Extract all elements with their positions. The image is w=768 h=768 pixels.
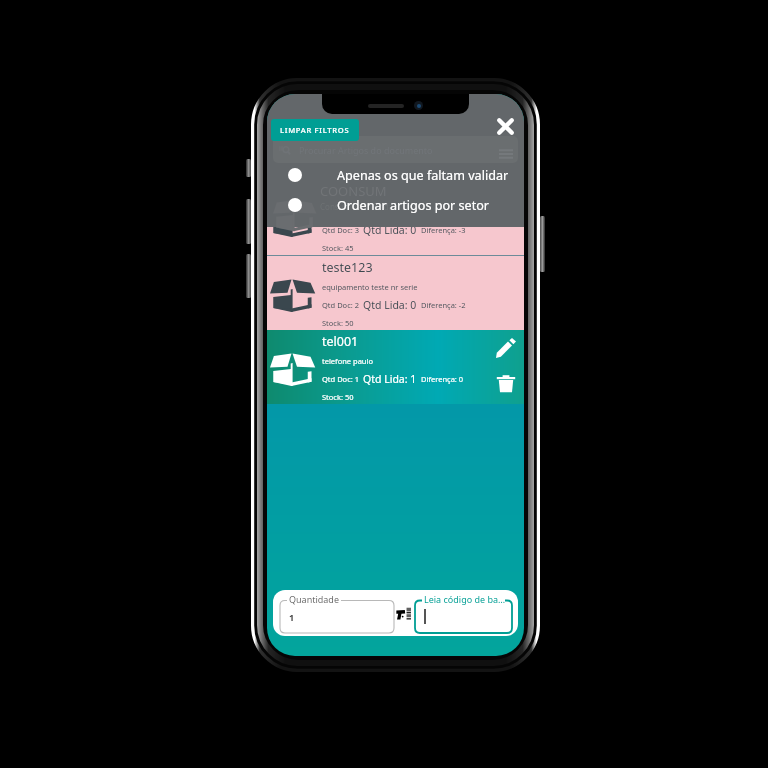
staticText: Stock: 45 [322,243,354,253]
staticText: tel001 [322,333,359,350]
button[interactable]: Delete [494,371,518,395]
staticText: Diferença: -2 [421,300,466,310]
button[interactable]: Quantidade [280,593,394,633]
staticText: Qtd Doc: 3 [322,225,359,235]
staticText: equipamento teste nr serie [322,282,418,292]
staticText: Consumiveis Venda [322,207,391,217]
button[interactable]: Procurar Artigos do documento [273,154,518,180]
button[interactable]: Leia código de ba… [415,593,512,633]
staticText: Qtd Doc: 1 [322,374,359,384]
staticText: Quantidade [289,593,339,605]
button[interactable]: Scan barcode [395,604,414,623]
staticText: Apenas os que faltam validar [337,167,509,184]
staticText: Stock: 50 [322,392,354,402]
button[interactable]: Ordenar artigos por setor [267,192,524,218]
staticText: Leia código de ba… [424,593,506,605]
staticText: Diferença: 0 [421,374,464,384]
button[interactable]: Edit [494,336,518,360]
staticText: Qtd Lida: 0 [363,298,417,312]
staticText: 1 [289,611,295,623]
staticText: Qtd Lida: 0 [363,223,417,237]
button[interactable]: Apenas os que faltam validar [267,162,524,188]
staticText: Qtd Lida: 1 [363,372,417,386]
staticText: Ordenar artigos por setor [337,197,490,214]
staticText: Diferença: -3 [421,225,466,235]
staticText: Qtd Doc: 2 [322,300,359,310]
staticText: teste123 [322,259,373,276]
staticText: telefone paulo [322,356,373,366]
staticText: COONSUM [322,184,387,201]
button[interactable]: tel001 [267,330,524,404]
button[interactable]: LIMPAR FILTROS [271,119,359,141]
button[interactable]: teste123 [267,256,524,330]
button[interactable]: Close [492,113,518,139]
button[interactable]: Menu [512,157,518,177]
staticText: Stock: 50 [322,318,354,328]
staticText: LIMPAR FILTROS [280,125,350,135]
staticText: Consumiveis Venda [320,201,394,212]
staticText: Procurar Artigos do documento [300,162,434,174]
staticText: COONSUM [320,182,387,200]
button[interactable]: COONSUM [267,181,524,255]
